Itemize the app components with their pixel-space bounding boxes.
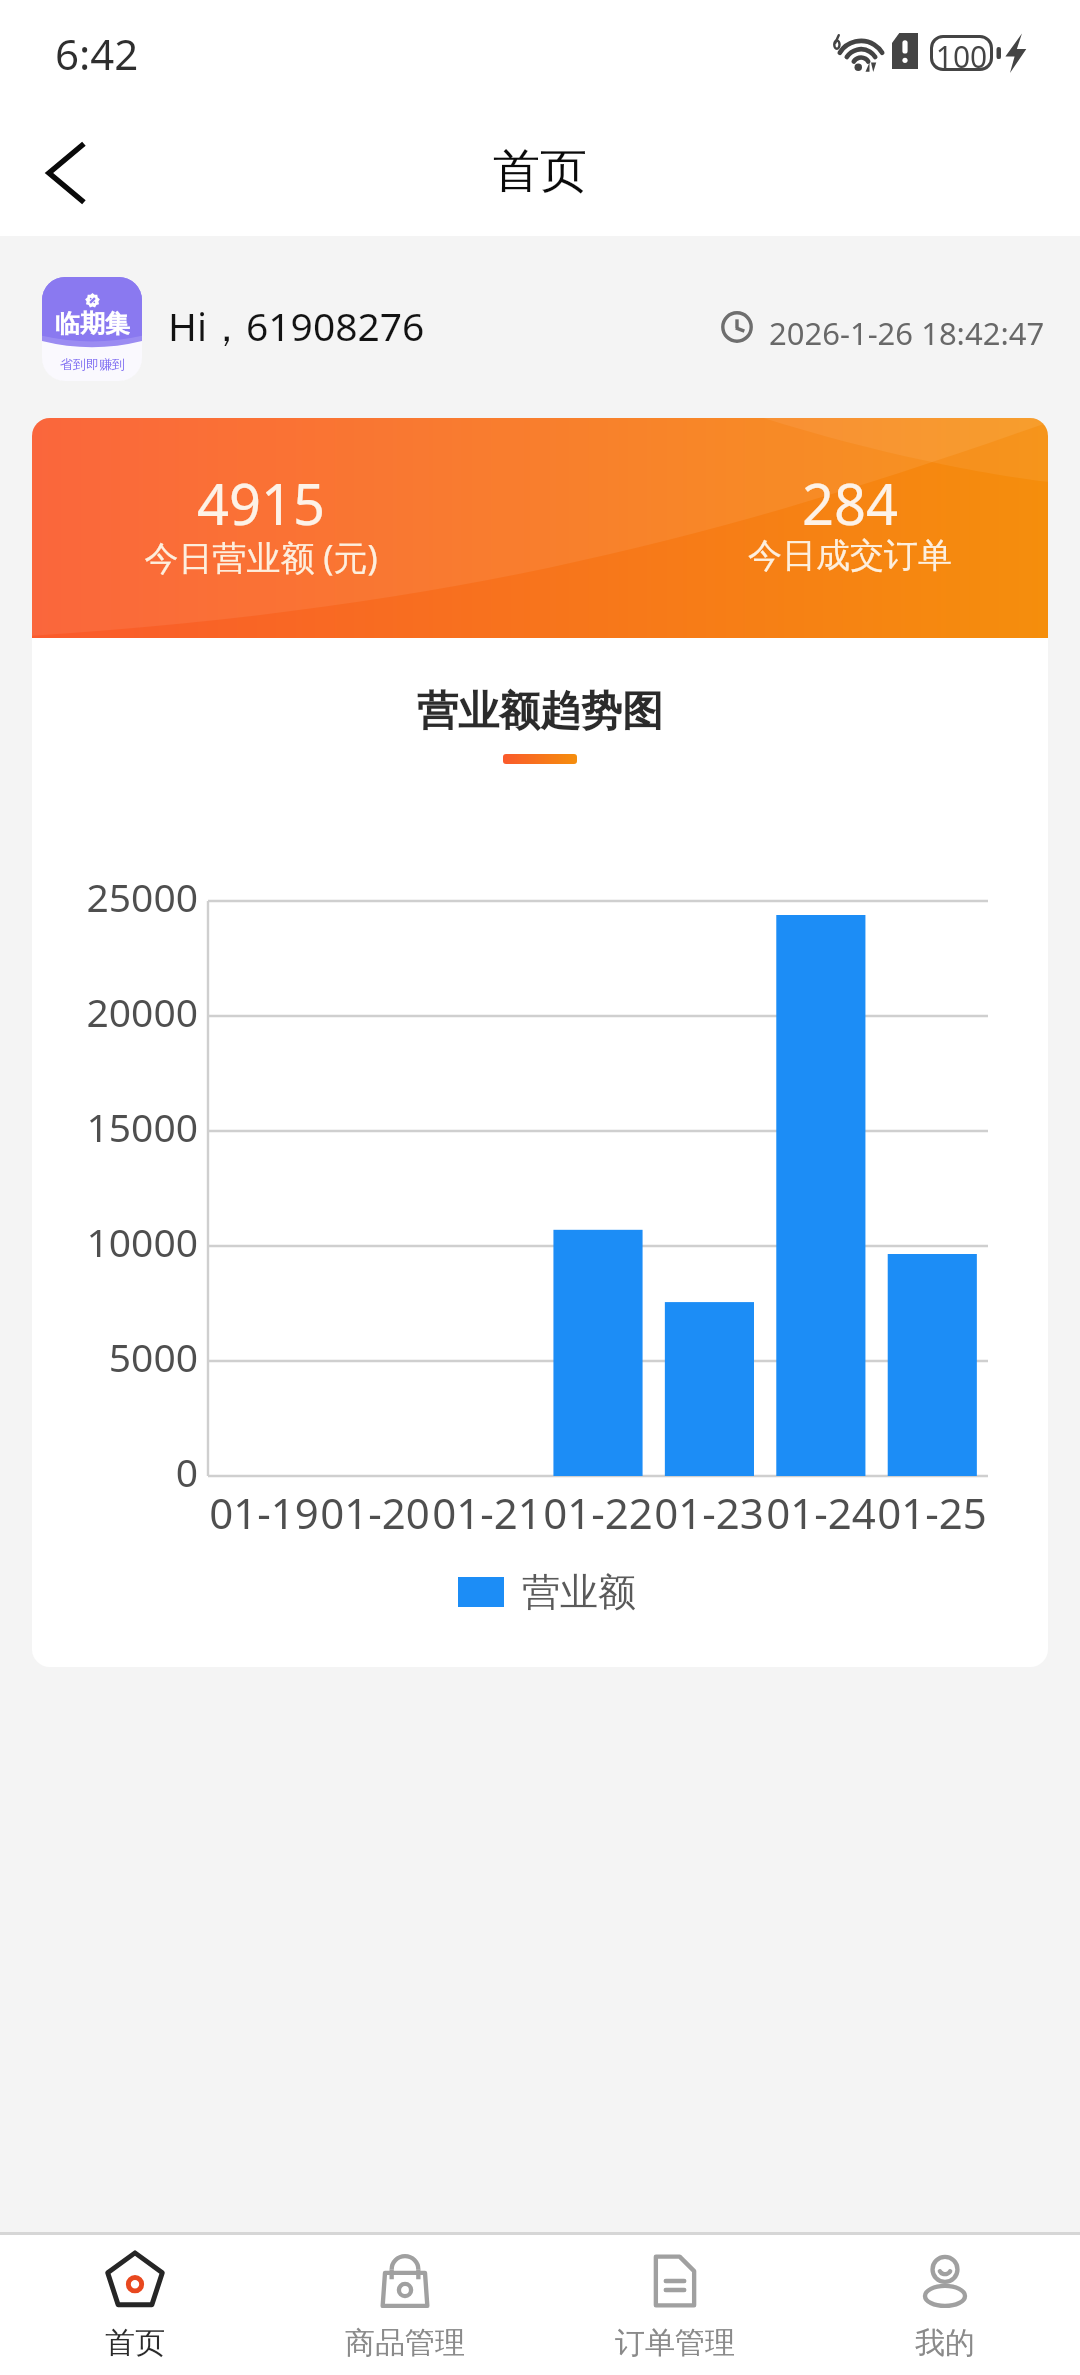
button[interactable]: Back bbox=[6, 110, 124, 236]
staticText: 首页 bbox=[105, 2324, 165, 2362]
staticText: 15000 bbox=[32, 1100, 198, 1153]
staticText: 01-25 bbox=[832, 1484, 1032, 1541]
staticText: 商品管理 bbox=[345, 2324, 465, 2362]
staticText: 284 bbox=[550, 465, 1048, 541]
staticText: 25000 bbox=[32, 870, 198, 923]
button[interactable]: 我的 bbox=[810, 2235, 1080, 2375]
staticText: 临期集 bbox=[55, 308, 130, 339]
staticText: 5000 bbox=[32, 1330, 198, 1383]
staticText: 01-19 bbox=[164, 1484, 364, 1541]
staticText: 营业额趋势图 bbox=[32, 686, 1048, 738]
staticText: 10000 bbox=[32, 1215, 198, 1268]
staticText: 首页 bbox=[493, 142, 587, 201]
button[interactable]: 商品管理 bbox=[270, 2235, 540, 2375]
staticText: 20000 bbox=[32, 985, 198, 1038]
staticText: 订单管理 bbox=[615, 2324, 735, 2362]
staticText: 我的 bbox=[915, 2324, 975, 2362]
staticText: 营业额 bbox=[522, 1568, 636, 1616]
staticText: 01-22 bbox=[498, 1484, 698, 1541]
button[interactable]: 订单管理 bbox=[540, 2235, 810, 2375]
button[interactable]: 首页 bbox=[0, 2235, 270, 2375]
staticText: 6:42 bbox=[55, 25, 139, 82]
staticText: 01-23 bbox=[609, 1484, 809, 1541]
staticText: 01-20 bbox=[275, 1484, 475, 1541]
staticText: 今日成交订单 bbox=[550, 534, 1048, 577]
staticText: 01-24 bbox=[721, 1484, 921, 1541]
staticText: 0 bbox=[32, 1445, 198, 1498]
staticText: Hi，61908276 bbox=[168, 299, 425, 352]
staticText: 2026-1-26 18:42:47 bbox=[769, 312, 1045, 354]
staticText: 4915 bbox=[32, 465, 561, 541]
staticText: 今日营业额 (元) bbox=[32, 534, 561, 580]
staticText: 省到即赚到 bbox=[60, 356, 125, 372]
staticText: 01-21 bbox=[387, 1484, 587, 1541]
staticText: 100 bbox=[930, 36, 993, 77]
